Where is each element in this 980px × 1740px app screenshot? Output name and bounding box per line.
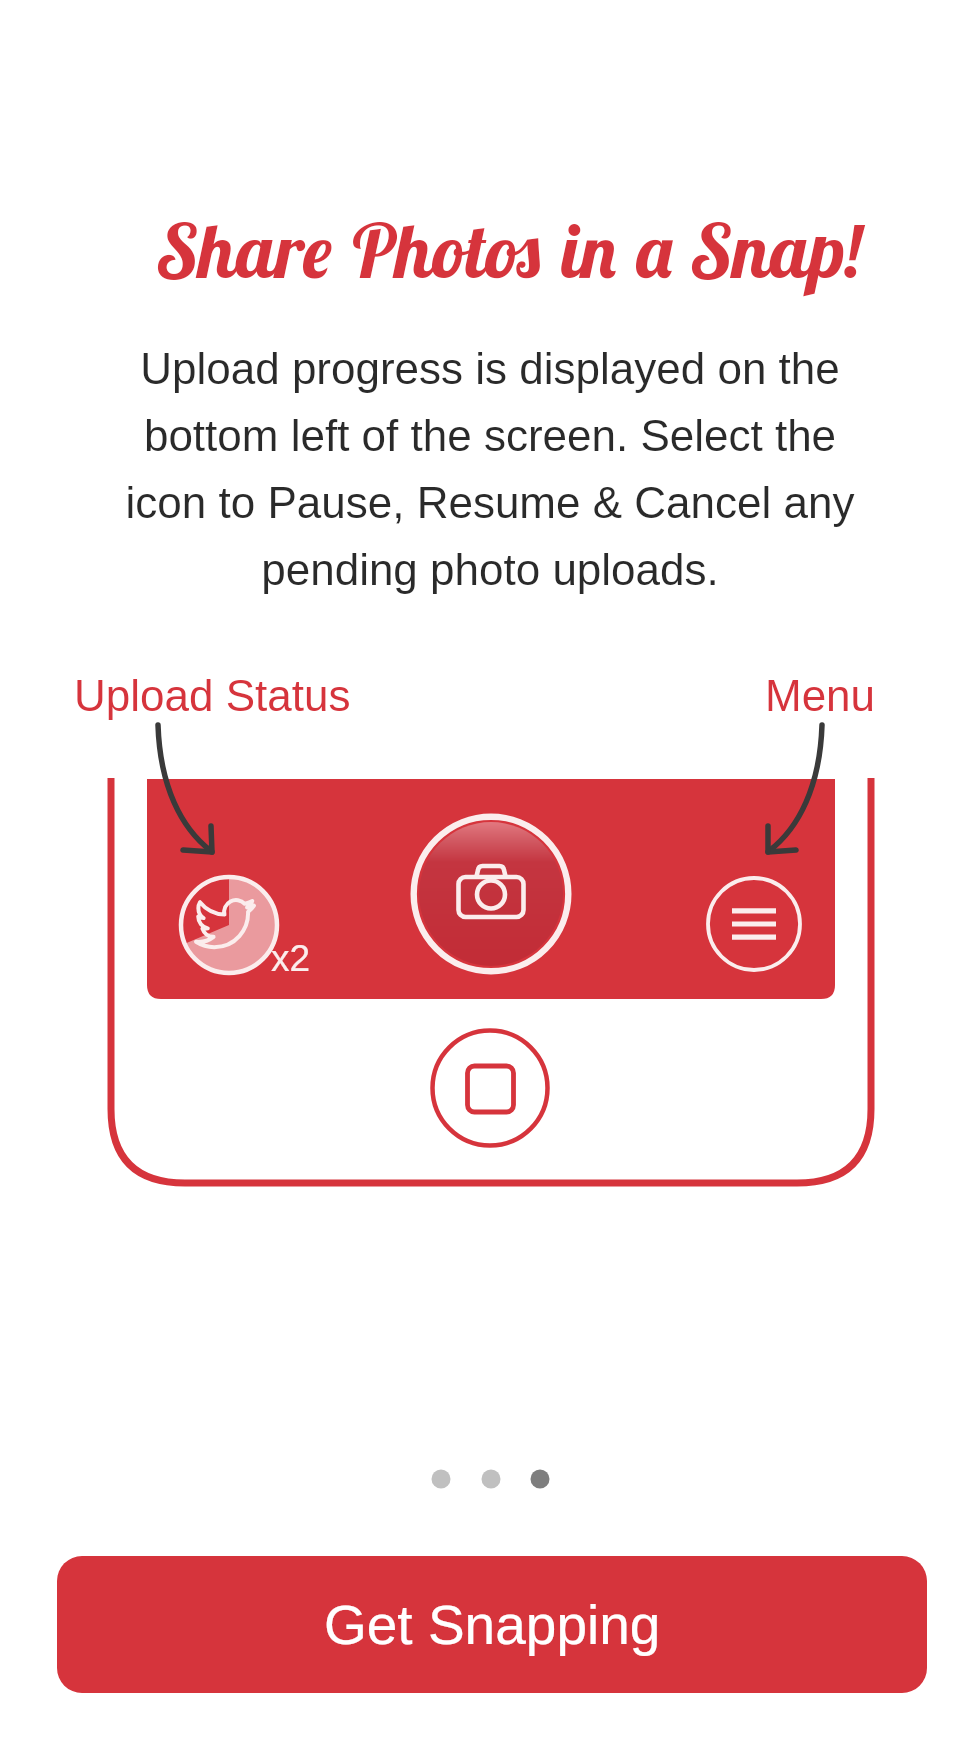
button[interactable]: Upload status	[183, 880, 275, 972]
button[interactable]: Page 1	[421, 1459, 461, 1499]
button[interactable]: Get Snapping	[57, 1556, 927, 1693]
staticText: Upload Status	[74, 671, 351, 720]
staticText: Upload progress is displayed on the bott…	[118, 344, 862, 594]
staticText: Share Photos in a Snap!	[21, 203, 980, 297]
staticText: Get Snapping	[324, 1594, 661, 1655]
button[interactable]: Menu	[703, 874, 803, 974]
button[interactable]: Take photo	[406, 807, 576, 977]
button[interactable]: Page 2	[471, 1459, 511, 1499]
staticText: x2	[271, 938, 311, 979]
staticText: Menu	[765, 671, 876, 720]
button[interactable]: Page 3, current page	[520, 1459, 560, 1499]
